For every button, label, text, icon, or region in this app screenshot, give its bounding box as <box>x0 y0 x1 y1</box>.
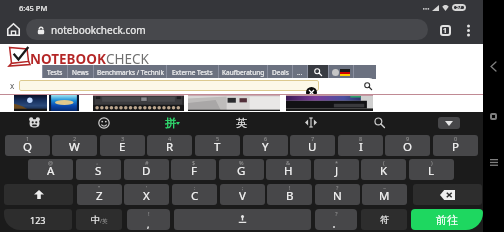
button[interactable]: Handwriting <box>0 112 69 133</box>
staticText: 拼 <box>165 116 176 130</box>
staticText: 英 <box>236 116 247 130</box>
button[interactable]: Benchmarks / Technik <box>94 65 166 79</box>
button[interactable]: Language <box>329 65 353 79</box>
button[interactable]: Search <box>362 80 373 91</box>
button[interactable]: 中 <box>76 209 122 230</box>
staticText: Externe Tests <box>172 68 213 77</box>
staticText: 0 <box>454 135 458 142</box>
button[interactable]: ; <box>220 184 265 205</box>
button[interactable]: 9 <box>385 135 430 156</box>
button[interactable]: ! <box>267 184 312 205</box>
staticText: ! <box>148 210 150 218</box>
staticText: G <box>237 163 246 179</box>
button[interactable]: 7 <box>290 135 335 156</box>
button[interactable]: Back <box>483 56 504 77</box>
button[interactable]: 123 <box>4 209 72 230</box>
button[interactable]: 4 <box>147 135 192 156</box>
button[interactable]: Tabs <box>434 18 456 42</box>
button[interactable]: Shift <box>4 184 73 205</box>
staticText: O <box>403 139 412 155</box>
button[interactable]: Move cursor <box>276 112 345 133</box>
staticText: 123 <box>30 214 46 226</box>
staticText: CHECK <box>106 50 149 64</box>
button[interactable]: notebookcheck.com <box>26 19 428 40</box>
button[interactable]: 5 <box>195 135 240 156</box>
staticText: Y <box>262 139 269 155</box>
button[interactable]: News <box>68 65 93 79</box>
button[interactable]: @ <box>28 159 73 180</box>
button[interactable]: 6 <box>243 135 288 156</box>
staticText: 6:45 PM <box>19 3 48 13</box>
button[interactable]: ! <box>127 209 170 230</box>
staticText: B <box>286 188 294 204</box>
staticText: T <box>214 139 221 155</box>
button[interactable]: 3 <box>100 135 145 156</box>
button[interactable]: " <box>77 184 122 205</box>
button[interactable]: % <box>219 159 264 180</box>
button[interactable]: ~ <box>362 184 407 205</box>
staticText: 9 <box>406 135 410 142</box>
staticText: A <box>47 163 55 179</box>
button[interactable]: Home <box>483 106 504 127</box>
button[interactable]: 2 <box>52 135 97 156</box>
staticText: Tests <box>47 68 63 77</box>
button[interactable]: ( <box>361 159 406 180</box>
button[interactable]: More options <box>458 18 478 42</box>
staticText: Deals <box>272 68 289 77</box>
staticText: notebookcheck.com <box>51 23 146 37</box>
staticText: ' <box>146 184 148 191</box>
button[interactable]: Externe Tests <box>167 65 218 79</box>
staticText: C <box>191 188 199 204</box>
button[interactable]: ' <box>124 184 169 205</box>
button[interactable]: 1 <box>5 135 50 156</box>
staticText: 2 <box>73 135 77 142</box>
button[interactable]: # <box>124 159 169 180</box>
button[interactable]: 0 <box>433 135 478 156</box>
staticText: ; <box>242 184 244 191</box>
staticText: E <box>119 139 126 155</box>
staticText: Benchmarks / Technik <box>97 68 164 77</box>
button[interactable]: 符 <box>361 209 407 230</box>
staticText: 符 <box>380 214 389 225</box>
button[interactable]: Hide keyboard <box>438 117 460 129</box>
button[interactable]: Pinyin <box>138 112 207 133</box>
button[interactable]: & <box>266 159 311 180</box>
staticText: @ <box>48 159 53 166</box>
button[interactable] <box>19 80 319 91</box>
staticText: Z <box>96 188 103 204</box>
button[interactable]: Chinese English <box>207 112 276 133</box>
button[interactable]: Close <box>306 87 317 98</box>
button[interactable]: Emoji <box>69 112 138 133</box>
staticText: V <box>239 188 246 204</box>
staticText: 1 <box>443 26 448 36</box>
button[interactable]: Home <box>0 15 27 44</box>
button[interactable]: : <box>172 184 217 205</box>
button[interactable]: Search <box>345 112 414 133</box>
button[interactable]: Tests <box>43 65 67 79</box>
button[interactable]: ? <box>315 184 360 205</box>
button[interactable]: $ <box>171 159 216 180</box>
button[interactable]: 。 <box>76 159 121 180</box>
button[interactable]: 8 <box>338 135 383 156</box>
staticText: % <box>239 159 244 166</box>
button[interactable]: Space <box>174 209 311 230</box>
button[interactable]: ? <box>315 209 357 230</box>
button[interactable]: * <box>314 159 359 180</box>
staticText: U <box>308 139 317 155</box>
staticText: : <box>194 184 196 191</box>
button[interactable]: ... <box>293 65 307 79</box>
button[interactable]: Recent apps <box>483 152 504 173</box>
button[interactable]: ) <box>409 159 454 180</box>
staticText: ~ <box>383 184 387 191</box>
button[interactable]: Deals <box>268 65 292 79</box>
staticText: 8 <box>359 135 363 142</box>
button[interactable]: 前往 <box>411 209 483 230</box>
button[interactable]: Kaufberatung <box>219 65 267 79</box>
staticText: 7 <box>311 135 315 142</box>
staticText: Kaufberatung <box>222 68 265 77</box>
button[interactable]: Search site <box>308 65 328 79</box>
button[interactable]: Backspace <box>413 184 482 205</box>
staticText: $ <box>192 159 196 166</box>
staticText: S <box>95 163 102 179</box>
staticText: Q <box>23 139 32 155</box>
